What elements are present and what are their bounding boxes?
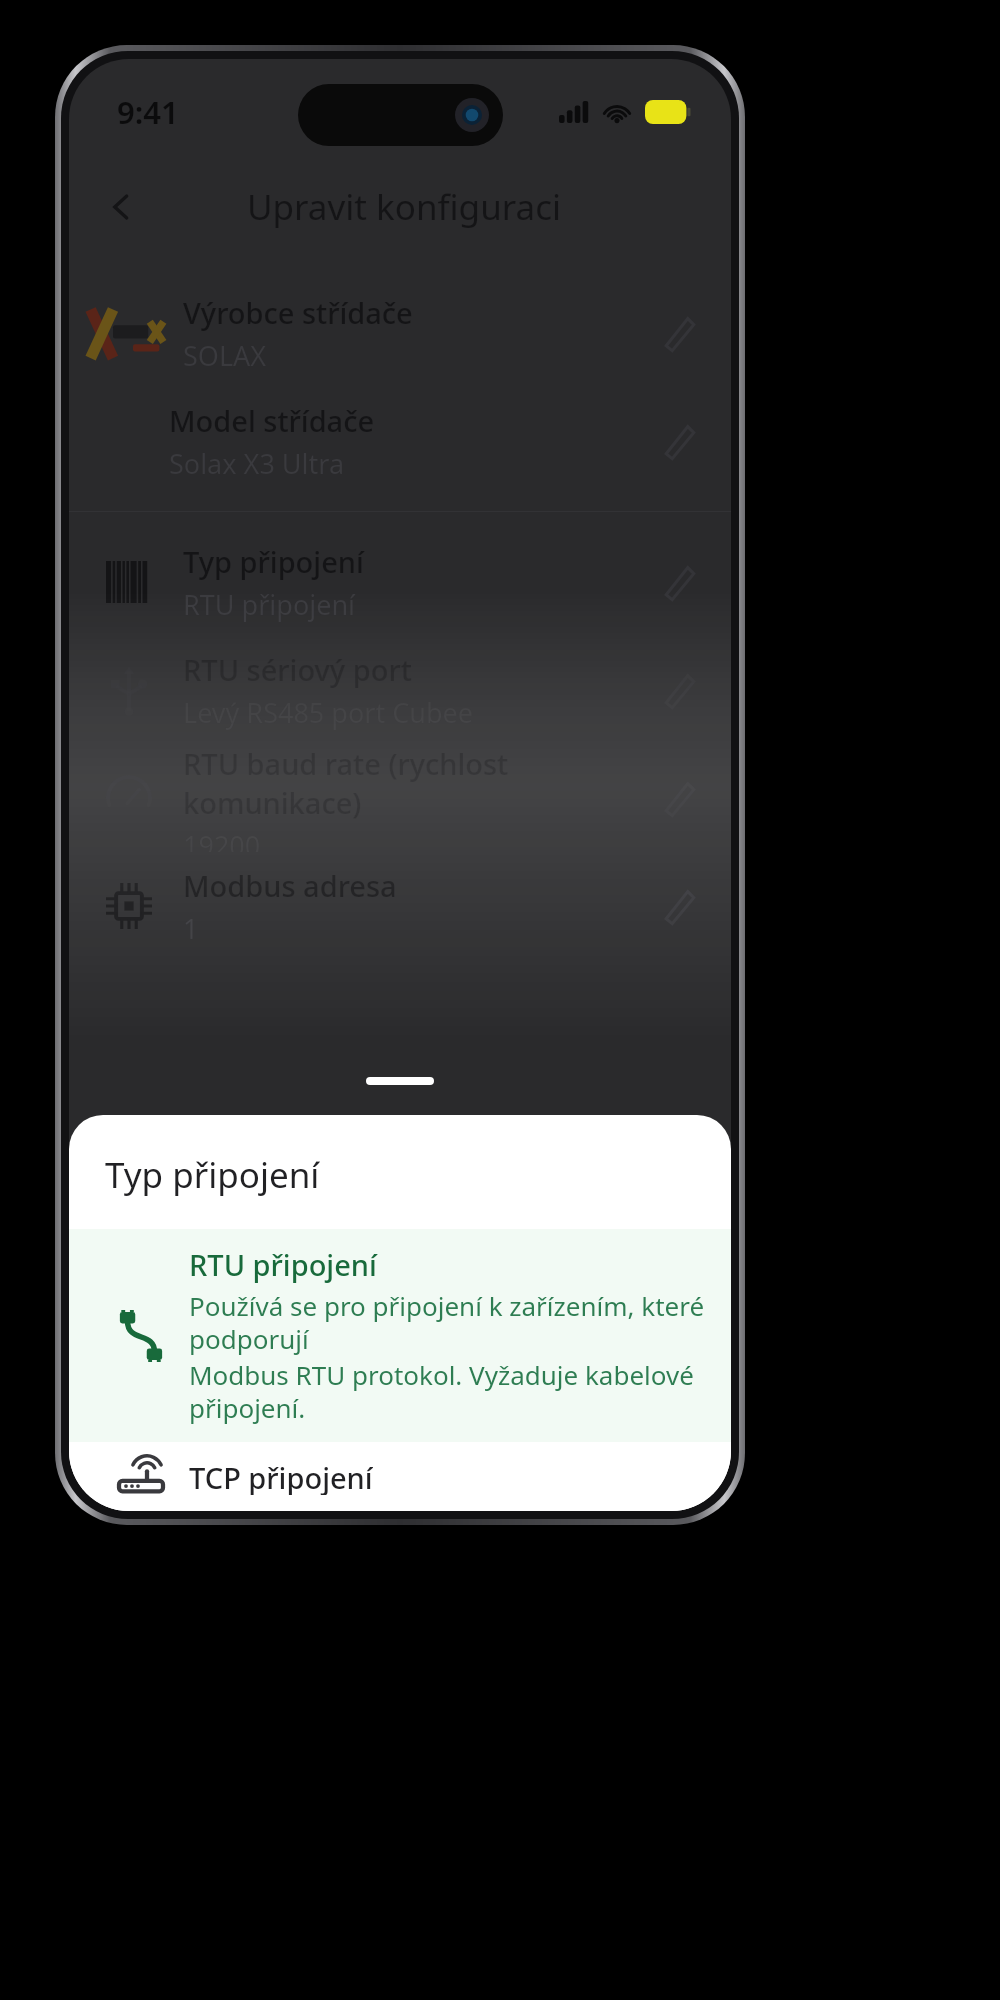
button[interactable]: TCP připojení bbox=[69, 1442, 731, 1511]
staticText: Používá se pro připojení k zařízením, kt… bbox=[189, 1288, 707, 1357]
staticText: Modbus adresa bbox=[183, 866, 397, 905]
button[interactable]: Typ připojení bbox=[69, 528, 731, 636]
button[interactable]: RTU připojení bbox=[69, 1229, 731, 1442]
button[interactable]: Modbus adresa bbox=[69, 852, 731, 960]
button[interactable]: Model střídače bbox=[69, 387, 731, 495]
button[interactable]: RTU sériový port bbox=[69, 636, 731, 744]
button[interactable]: Edit Modbus adresa bbox=[647, 874, 711, 938]
staticText: RTU baud rate (rychlost komunikace) bbox=[183, 744, 647, 822]
staticText: RTU sériový port bbox=[183, 650, 412, 689]
staticText: TCP připojení bbox=[189, 1458, 373, 1495]
staticText: Modbus RTU protokol. Vyžaduje kabelové p… bbox=[189, 1357, 707, 1426]
staticText: Typ připojení bbox=[105, 1151, 320, 1199]
button[interactable]: Back bbox=[89, 175, 153, 239]
staticText: Výrobce střídače bbox=[183, 293, 413, 332]
staticText: 9:41 bbox=[117, 91, 179, 133]
staticText: Typ připojení bbox=[183, 542, 364, 581]
staticText: SOLAX bbox=[183, 337, 267, 374]
staticText: RTU připojení bbox=[183, 586, 356, 623]
staticText: Model střídače bbox=[169, 401, 375, 440]
staticText: Solax X3 Ultra bbox=[169, 445, 345, 482]
staticText: 1 bbox=[183, 910, 199, 947]
staticText: RTU připojení bbox=[189, 1245, 377, 1284]
staticText: Upravit konfiguraci bbox=[247, 183, 561, 231]
button[interactable]: Výrobce střídače bbox=[69, 279, 731, 387]
